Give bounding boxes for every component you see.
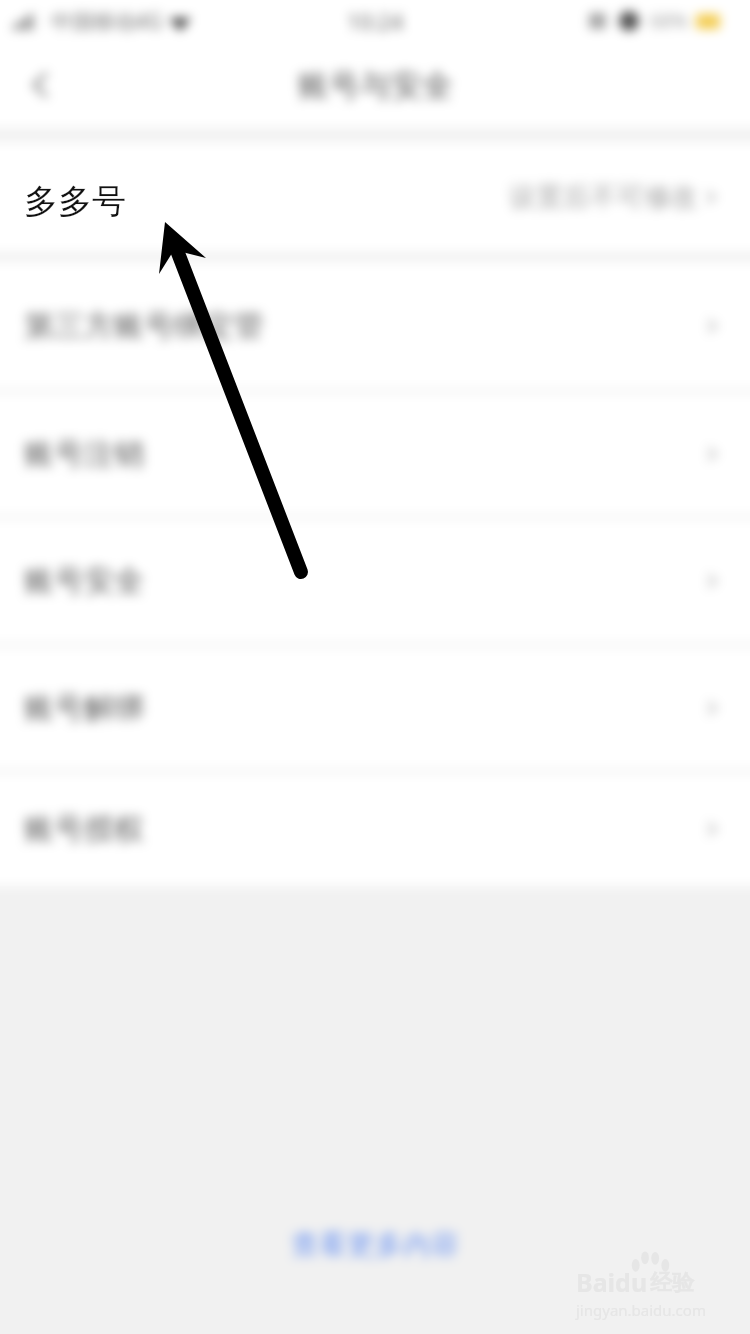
button[interactable]: 设置后不可修改	[0, 142, 750, 252]
staticText: 中国移动4G	[51, 7, 163, 36]
staticText: 账号注销	[24, 435, 144, 473]
staticText: 账号解绑	[24, 689, 144, 727]
button[interactable]: 账号解绑	[0, 646, 750, 770]
button[interactable]: 查看更多内容	[291, 1227, 459, 1262]
staticText: 设置后不可修改	[509, 180, 698, 214]
staticText: 第三方账号绑定管	[24, 307, 264, 345]
staticText: 账号安全	[24, 562, 144, 600]
staticText: 多多号	[24, 180, 126, 223]
button[interactable]: 第三方账号绑定管	[0, 262, 750, 390]
button[interactable]: Back	[10, 54, 72, 116]
staticText: 账号与安全	[298, 66, 453, 105]
staticText: 查看更多内容	[291, 1227, 459, 1262]
staticText: 10:24	[347, 6, 404, 36]
staticText: 68%	[650, 8, 688, 34]
staticText: 经验	[650, 1269, 694, 1297]
button[interactable]: 账号授权	[0, 772, 750, 886]
button[interactable]: 账号注销	[0, 392, 750, 516]
button[interactable]: 账号安全	[0, 518, 750, 644]
staticText: Baidu	[576, 1265, 648, 1299]
staticText: 账号授权	[24, 810, 144, 848]
staticText: jingyan.baidu.com	[576, 1300, 706, 1320]
